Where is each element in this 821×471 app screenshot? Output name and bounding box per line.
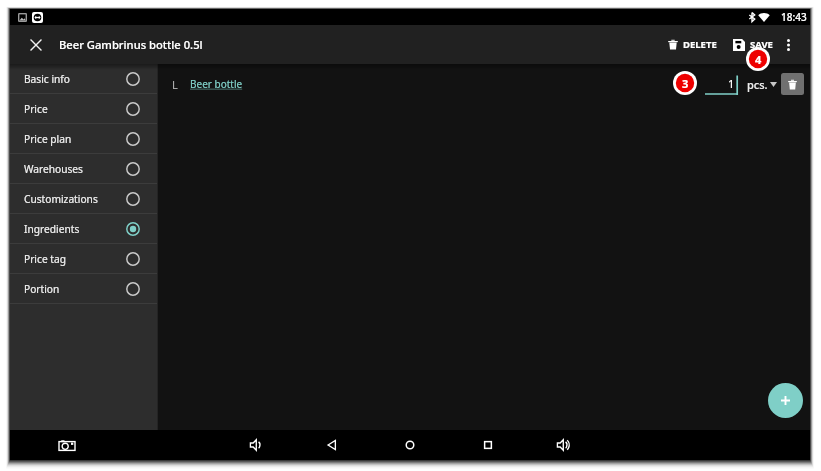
staticText: Warehouses [24, 162, 83, 176]
button[interactable]: SAVE [728, 25, 778, 64]
button[interactable]: Warehouses [10, 154, 157, 184]
staticText: 4 [755, 52, 762, 67]
button[interactable]: Home [392, 430, 428, 460]
button[interactable]: DELETE [663, 25, 722, 64]
staticText: Price [24, 102, 48, 116]
staticText: Price plan [24, 132, 72, 146]
staticText: Basic info [24, 72, 70, 86]
staticText: SAVE [750, 38, 773, 51]
staticText: Beer Gambrinus bottle 0.5l [59, 37, 203, 52]
button[interactable]: Basic info [10, 64, 157, 94]
staticText: Price tag [24, 252, 66, 266]
button[interactable]: Remove ingredient [781, 73, 804, 95]
button[interactable]: Volume down [238, 430, 274, 460]
button[interactable]: Back [314, 430, 350, 460]
staticText: Customizations [24, 192, 98, 206]
staticText: pcs. [747, 77, 768, 92]
button[interactable]: Close [22, 31, 50, 59]
button[interactable]: Recents [470, 430, 506, 460]
button[interactable]: Price [10, 94, 157, 124]
button[interactable]: Add ingredient [768, 383, 803, 418]
button[interactable]: L [158, 64, 810, 104]
staticText: Portion [24, 282, 60, 296]
button[interactable]: Portion [10, 274, 157, 304]
button[interactable]: More options [777, 25, 799, 64]
staticText: 1 [728, 76, 735, 91]
staticText: 3 [682, 76, 689, 91]
button[interactable]: Customizations [10, 184, 157, 214]
button[interactable]: Ingredients [10, 214, 157, 244]
button[interactable]: Price tag [10, 244, 157, 274]
staticText: Beer bottle [190, 77, 243, 91]
staticText: Ingredients [24, 222, 80, 236]
button[interactable]: Price plan [10, 124, 157, 154]
staticText: 18:43 [781, 10, 807, 24]
button[interactable]: Screenshot [50, 430, 84, 460]
button[interactable]: pcs. [747, 69, 777, 99]
staticText: L [172, 77, 178, 92]
staticText: DELETE [683, 38, 717, 51]
button[interactable]: Volume up [545, 430, 581, 460]
